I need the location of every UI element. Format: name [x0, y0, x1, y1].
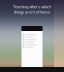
staticText: things aren't of home — [14, 9, 50, 15]
staticText: Teaching others which — [13, 4, 51, 9]
